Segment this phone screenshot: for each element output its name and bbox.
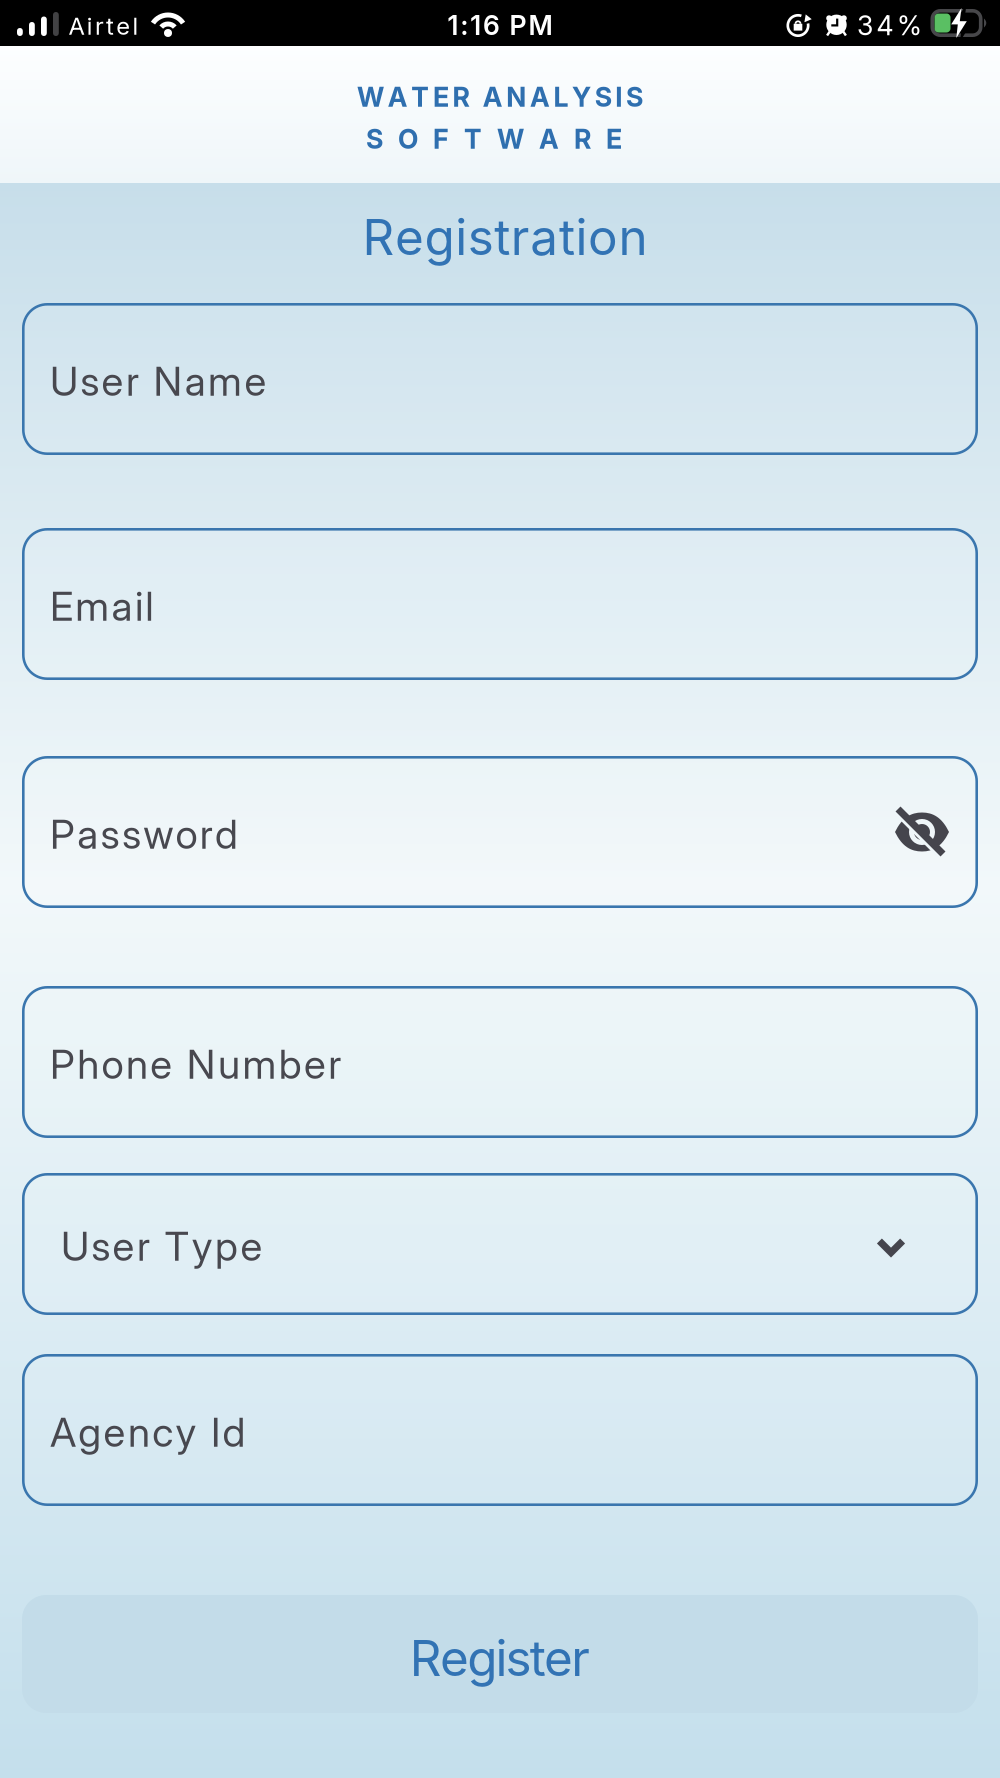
staticText: E (50, 583, 73, 630)
staticText: Y (572, 81, 591, 113)
staticText: w (143, 811, 173, 858)
staticText: L (553, 81, 568, 113)
staticText: N (187, 1041, 216, 1088)
staticText: e (440, 1629, 469, 1687)
staticText: A (50, 1409, 76, 1456)
staticText: a (112, 583, 133, 630)
staticText: A (388, 81, 408, 113)
staticText: O (398, 123, 418, 155)
staticText: r (95, 12, 104, 40)
staticText: c (152, 1409, 173, 1456)
staticText: o (175, 811, 197, 858)
staticText: i (87, 12, 93, 40)
button[interactable]: Show password (894, 804, 950, 860)
staticText: n (128, 1409, 150, 1456)
staticText: t (494, 208, 510, 266)
staticText: d (222, 1409, 245, 1456)
staticText: F (433, 123, 449, 155)
staticText: 1 (470, 10, 481, 41)
staticText: S (626, 81, 643, 113)
staticText: s (122, 811, 141, 858)
staticText: T (411, 81, 429, 113)
staticText: P (50, 1041, 75, 1088)
staticText: a (185, 358, 206, 405)
staticText: W (357, 81, 384, 113)
staticText: y (175, 1409, 196, 1456)
staticText: 1 (448, 10, 459, 41)
staticText: U (61, 1223, 89, 1270)
staticText: I (211, 1409, 220, 1456)
staticText: g (425, 208, 455, 266)
staticText: s (80, 358, 99, 405)
staticText: 4 (876, 10, 893, 41)
staticText: y (192, 1223, 213, 1270)
staticText: d (215, 811, 238, 858)
staticText: r (328, 1041, 341, 1088)
staticText: i (575, 208, 587, 266)
staticText: i (455, 208, 467, 266)
staticText: e (102, 358, 124, 405)
staticText: N (506, 81, 526, 113)
staticText: A (530, 81, 550, 113)
staticText: S (595, 81, 612, 113)
staticText: : (460, 10, 468, 41)
staticText: g (78, 1409, 101, 1456)
staticText: m (75, 583, 109, 630)
staticText: e (244, 358, 266, 405)
staticText: m (208, 358, 242, 405)
button[interactable]: R (22, 1595, 978, 1713)
staticText: r (137, 1223, 150, 1270)
staticText: b (279, 1041, 302, 1088)
staticText: l (132, 12, 138, 40)
staticText: o (102, 1041, 124, 1088)
staticText: t (559, 208, 575, 266)
staticText: r (511, 208, 530, 266)
staticText: A (68, 12, 84, 40)
button[interactable]: P (22, 756, 978, 908)
staticText: U (50, 358, 78, 405)
staticText: e (116, 12, 130, 40)
staticText: l (145, 583, 153, 630)
staticText: u (218, 1041, 240, 1088)
staticText: A (539, 123, 559, 155)
staticText: e (304, 1041, 326, 1088)
staticText: n (126, 1041, 148, 1088)
staticText: s (506, 1629, 532, 1687)
button[interactable]: E (22, 528, 978, 680)
staticText: T (464, 123, 482, 155)
staticText: a (530, 208, 558, 266)
staticText: r (126, 358, 139, 405)
staticText: s (468, 208, 494, 266)
staticText: p (215, 1223, 238, 1270)
button[interactable]: A (22, 1354, 978, 1506)
staticText: % (897, 10, 922, 41)
staticText: e (104, 1409, 126, 1456)
staticText: N (153, 358, 182, 405)
staticText: e (395, 208, 424, 266)
staticText: I (615, 81, 622, 113)
staticText: g (467, 1629, 497, 1687)
button[interactable]: U (22, 303, 978, 455)
staticText: R (452, 81, 469, 113)
staticText: W (497, 123, 524, 155)
staticText: e (240, 1223, 262, 1270)
staticText: m (242, 1041, 276, 1088)
staticText: r (200, 811, 213, 858)
button[interactable]: Select user type (22, 1173, 978, 1315)
staticText: a (77, 811, 98, 858)
staticText: e (544, 1629, 573, 1687)
staticText: 3 (857, 10, 873, 41)
staticText: n (618, 208, 647, 266)
staticText: t (106, 12, 114, 40)
staticText: e (150, 1041, 172, 1088)
staticText: R (574, 123, 591, 155)
staticText: R (410, 1629, 442, 1687)
staticText: E (606, 123, 622, 155)
button[interactable]: P (22, 986, 978, 1138)
staticText: s (91, 1223, 110, 1270)
